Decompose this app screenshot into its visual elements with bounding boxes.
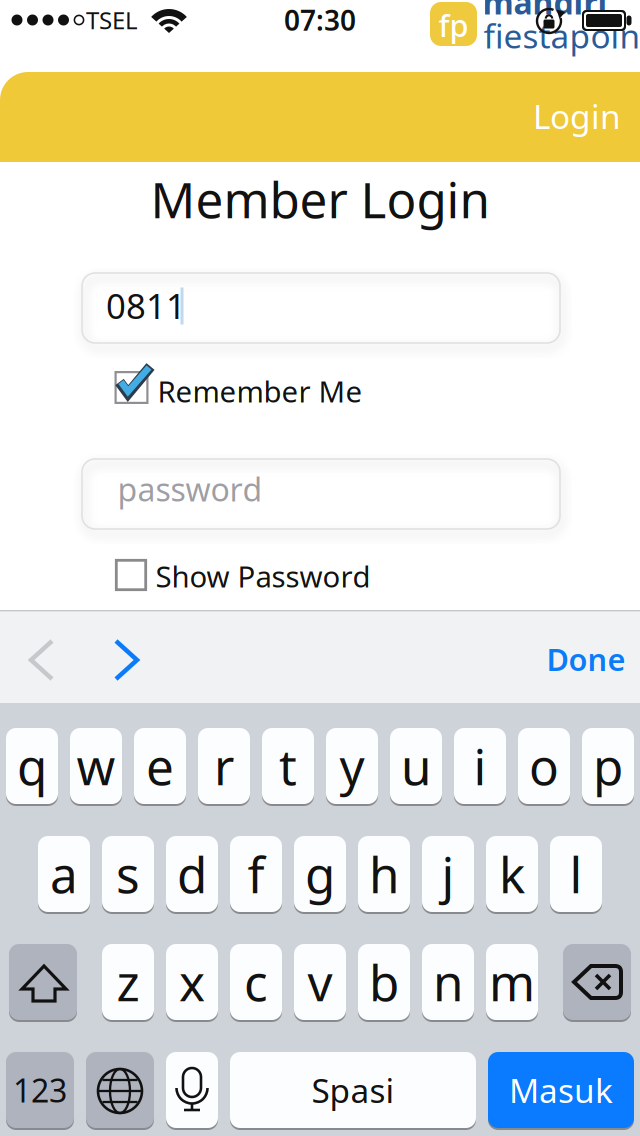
staticText: l: [569, 841, 582, 907]
staticText: y: [339, 733, 364, 799]
staticText: Masuk: [509, 1068, 613, 1112]
staticText: h: [369, 841, 399, 907]
staticText: Remember Me: [157, 371, 362, 410]
button[interactable]: o: [518, 728, 570, 804]
button[interactable]: c: [230, 944, 282, 1020]
staticText: f: [247, 841, 264, 907]
staticText: e: [146, 733, 174, 799]
staticText: fiestapoin: [483, 13, 640, 58]
staticText: 07:30: [284, 1, 356, 39]
staticText: fp: [438, 5, 468, 45]
button[interactable]: Previous field: [29, 640, 55, 680]
staticText: k: [499, 841, 525, 907]
staticText: 123: [13, 1069, 67, 1111]
button[interactable]: v: [294, 944, 346, 1020]
button[interactable]: Spasi: [230, 1052, 476, 1128]
button[interactable]: t: [262, 728, 314, 804]
staticText: Show Password: [155, 556, 370, 595]
staticText: w: [76, 733, 115, 799]
button[interactable]: Phone number: [82, 273, 560, 343]
staticText: q: [17, 733, 47, 799]
staticText: Login: [533, 94, 621, 138]
staticText: o: [529, 733, 559, 799]
button[interactable]: r: [198, 728, 250, 804]
staticText: d: [177, 841, 207, 907]
button[interactable]: b: [358, 944, 410, 1020]
staticText: g: [305, 841, 335, 907]
button[interactable]: Masuk: [488, 1052, 634, 1128]
staticText: p: [593, 733, 623, 799]
staticText: password: [117, 468, 262, 510]
button[interactable]: a: [38, 836, 90, 912]
button[interactable]: Password: [82, 459, 560, 529]
staticText: x: [179, 949, 205, 1015]
button[interactable]: e: [134, 728, 186, 804]
button[interactable]: k: [486, 836, 538, 912]
staticText: j: [441, 841, 454, 907]
button[interactable]: j: [422, 836, 474, 912]
staticText: a: [50, 841, 78, 907]
button[interactable]: s: [102, 836, 154, 912]
button[interactable]: f: [230, 836, 282, 912]
staticText: s: [116, 841, 140, 907]
staticText: m: [489, 949, 535, 1015]
button[interactable]: Next field: [113, 640, 139, 680]
staticText: v: [307, 949, 332, 1015]
button[interactable]: i: [454, 728, 506, 804]
button[interactable]: 123: [6, 1052, 74, 1128]
button[interactable]: Shift: [9, 944, 77, 1020]
staticText: r: [214, 733, 234, 799]
button[interactable]: Next keyboard: [86, 1052, 154, 1128]
staticText: z: [116, 949, 139, 1015]
staticText: Done: [546, 639, 625, 679]
staticText: b: [369, 949, 399, 1015]
button[interactable]: g: [294, 836, 346, 912]
button[interactable]: Show Password checkbox: [115, 559, 147, 591]
button[interactable]: p: [582, 728, 634, 804]
staticText: u: [401, 733, 431, 799]
button[interactable]: Remember Me checkbox: [114, 371, 148, 404]
staticText: Member Login: [150, 166, 489, 232]
button[interactable]: Delete: [563, 944, 631, 1020]
staticText: TSEL: [86, 4, 138, 36]
button[interactable]: l: [550, 836, 602, 912]
staticText: Spasi: [311, 1068, 394, 1112]
staticText: 0811: [106, 282, 186, 328]
button[interactable]: x: [166, 944, 218, 1020]
button[interactable]: h: [358, 836, 410, 912]
staticText: mandiri: [482, 0, 607, 23]
staticText: t: [279, 733, 297, 799]
button[interactable]: y: [326, 728, 378, 804]
staticText: n: [433, 949, 463, 1015]
button[interactable]: Login: [533, 94, 621, 138]
button[interactable]: u: [390, 728, 442, 804]
button[interactable]: Dictation: [166, 1052, 218, 1128]
staticText: c: [244, 949, 268, 1015]
button[interactable]: Done: [546, 639, 625, 679]
button[interactable]: m: [486, 944, 538, 1020]
button[interactable]: q: [6, 728, 58, 804]
staticText: i: [473, 733, 486, 799]
button[interactable]: w: [70, 728, 122, 804]
button[interactable]: z: [102, 944, 154, 1020]
button[interactable]: d: [166, 836, 218, 912]
button[interactable]: n: [422, 944, 474, 1020]
